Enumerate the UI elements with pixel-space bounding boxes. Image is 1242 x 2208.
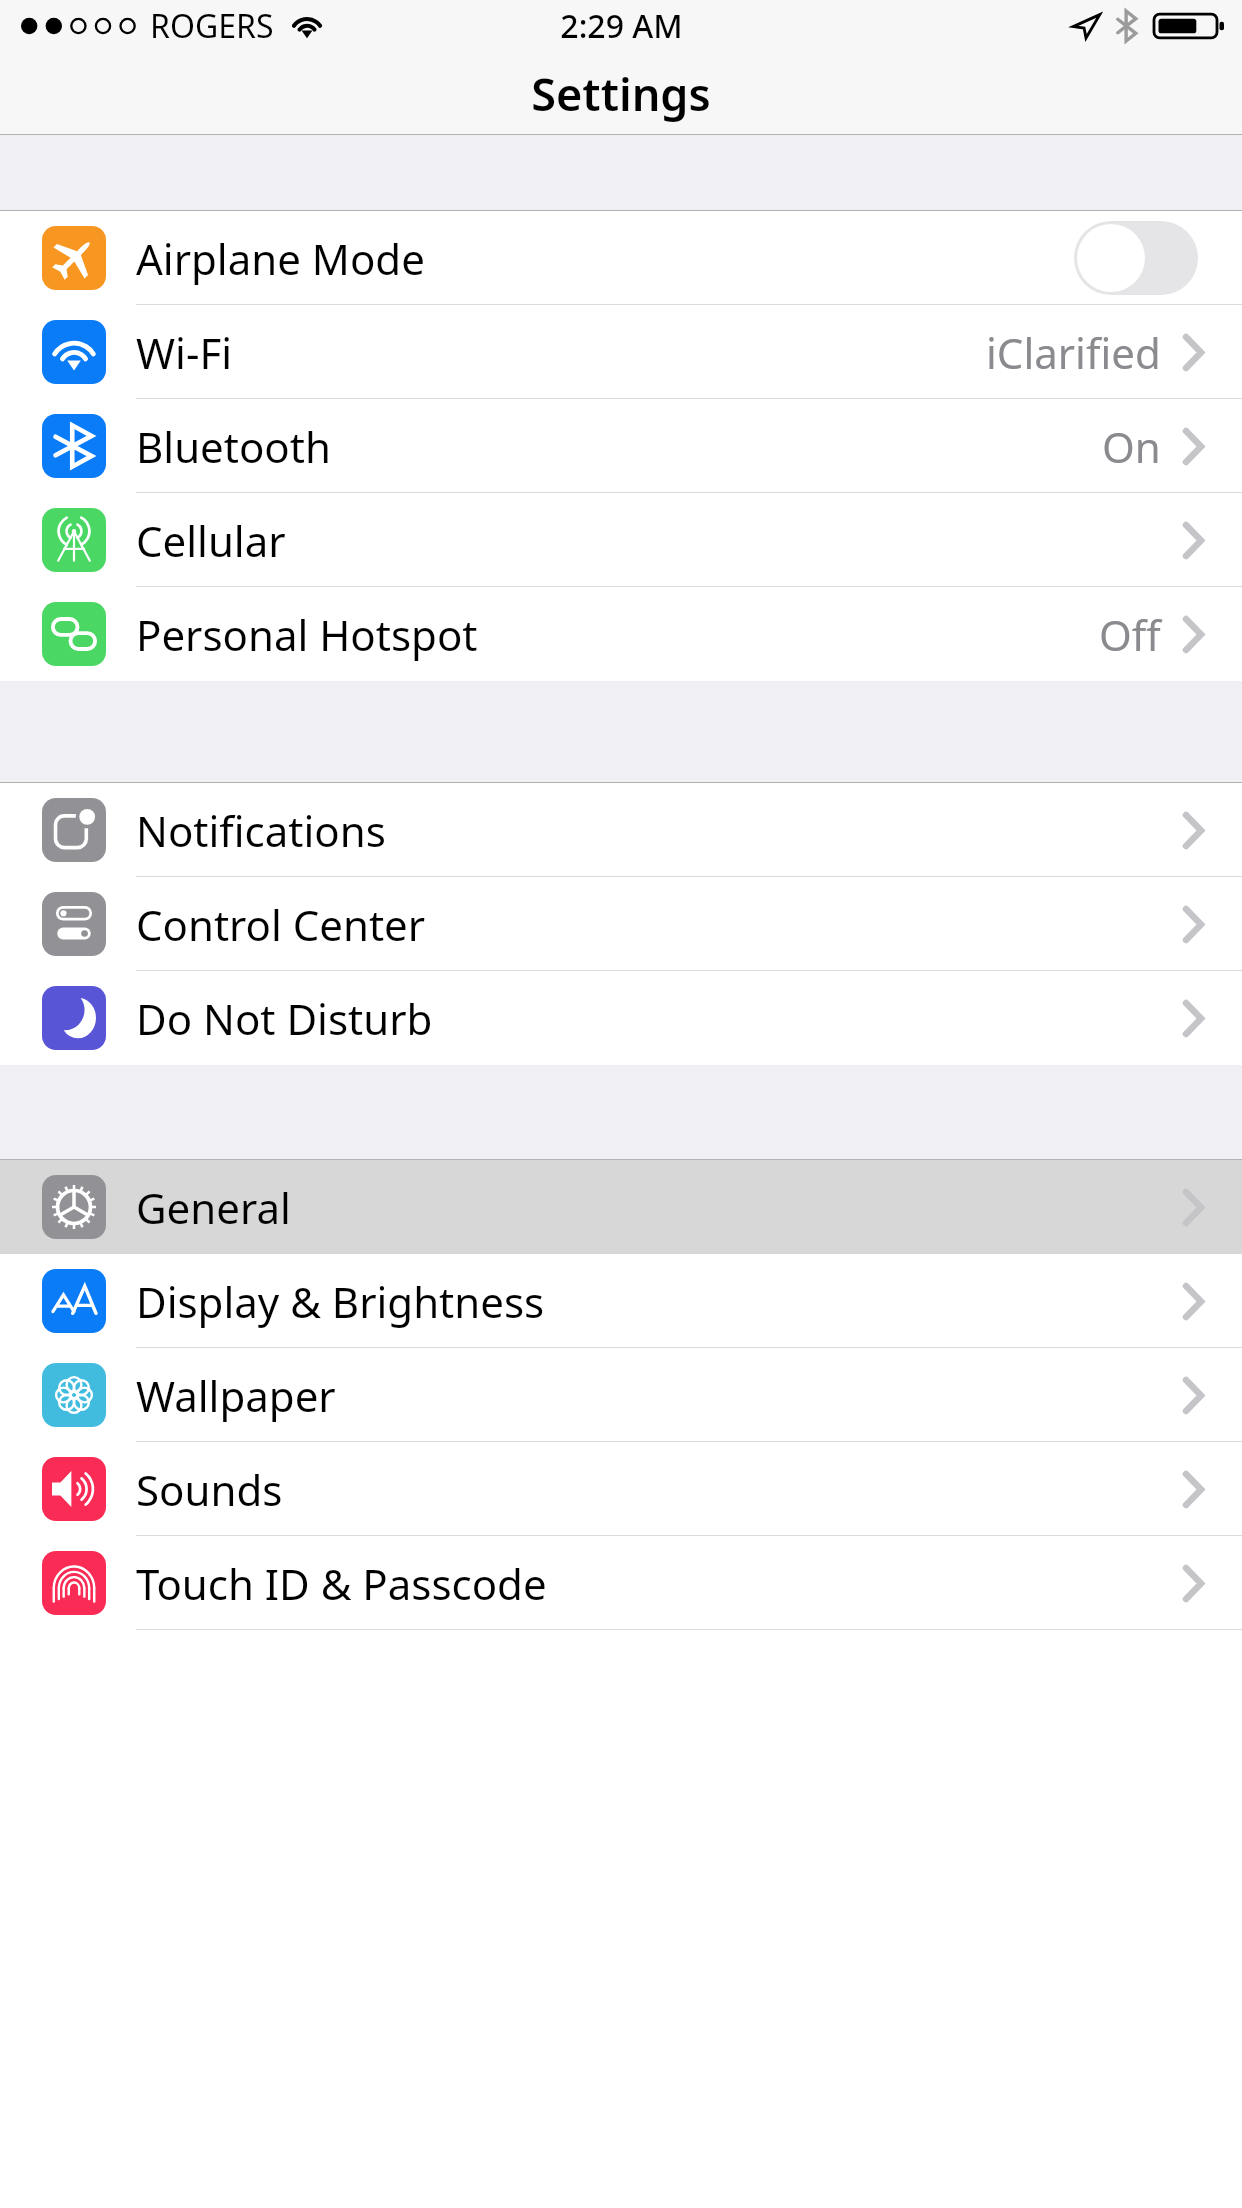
- button[interactable]: Display & Brightness: [0, 1254, 1242, 1348]
- staticText: Off: [1099, 606, 1161, 663]
- staticText: Notifications: [136, 802, 386, 859]
- staticText: Airplane Mode: [136, 230, 425, 287]
- staticText: Touch ID & Passcode: [136, 1555, 547, 1612]
- staticText: Wi-Fi: [136, 324, 233, 381]
- button[interactable]: Sounds: [0, 1442, 1242, 1536]
- button[interactable]: Wi-Fi: [0, 305, 1242, 399]
- button[interactable]: Bluetooth: [0, 399, 1242, 493]
- staticText: 2:29 AM: [560, 4, 683, 48]
- staticText: iClarified: [986, 324, 1161, 381]
- button[interactable]: Wallpaper: [0, 1348, 1242, 1442]
- staticText: Wallpaper: [136, 1367, 336, 1424]
- staticText: Control Center: [136, 896, 426, 953]
- button[interactable]: Control Center: [0, 877, 1242, 971]
- button[interactable]: Cellular: [0, 493, 1242, 587]
- button[interactable]: Airplane Mode: [0, 211, 1242, 305]
- button[interactable]: General: [0, 1160, 1242, 1254]
- staticText: Do Not Disturb: [136, 990, 433, 1047]
- staticText: ROGERS: [150, 4, 274, 48]
- staticText: Bluetooth: [136, 418, 331, 475]
- staticText: On: [1102, 418, 1161, 475]
- staticText: Display & Brightness: [136, 1273, 545, 1330]
- button[interactable]: Personal Hotspot: [0, 587, 1242, 681]
- staticText: Sounds: [136, 1461, 283, 1518]
- button[interactable]: Touch ID & Passcode: [0, 1536, 1242, 1630]
- staticText: Personal Hotspot: [136, 606, 478, 663]
- button[interactable]: Do Not Disturb: [0, 971, 1242, 1065]
- button[interactable]: Airplane Mode toggle, off: [1074, 221, 1198, 295]
- staticText: General: [136, 1179, 291, 1236]
- staticText: Settings: [531, 63, 711, 124]
- staticText: Cellular: [136, 512, 286, 569]
- button[interactable]: Notifications: [0, 783, 1242, 877]
